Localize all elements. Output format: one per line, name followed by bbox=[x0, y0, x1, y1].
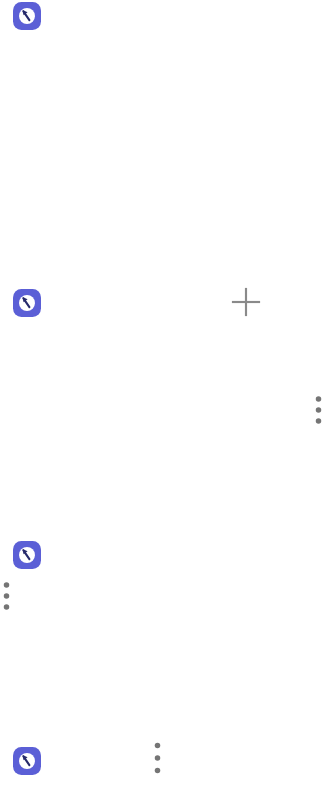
button[interactable]: Open app bbox=[13, 2, 41, 30]
button[interactable]: Add bbox=[231, 287, 261, 317]
button[interactable]: Open app bbox=[13, 541, 41, 569]
button[interactable]: Open app bbox=[13, 289, 41, 317]
button[interactable]: More options bbox=[309, 394, 325, 426]
button[interactable]: Open app bbox=[13, 747, 41, 775]
button[interactable]: More options bbox=[0, 580, 16, 612]
button[interactable]: More options bbox=[148, 740, 167, 776]
